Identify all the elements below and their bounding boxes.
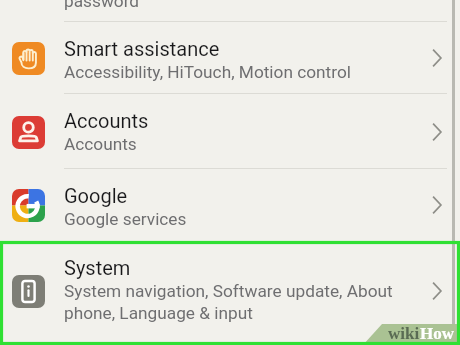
- staticText: wiki: [388, 324, 420, 343]
- staticText: Google: [64, 184, 128, 207]
- button[interactable]: Google: [0, 169, 460, 241]
- staticText: Smart assistance: [64, 37, 220, 60]
- staticText: How: [420, 324, 454, 343]
- button[interactable]: Smart assistance: [0, 22, 460, 94]
- staticText: password: [64, 0, 140, 11]
- staticText: Accounts: [64, 134, 137, 154]
- staticText: Google services: [64, 209, 187, 229]
- staticText: System navigation, Software update, Abou…: [64, 281, 414, 324]
- staticText: Accounts: [64, 109, 149, 132]
- button[interactable]: System: [0, 241, 460, 345]
- staticText: System: [64, 256, 131, 279]
- staticText: Accessibility, HiTouch, Motion control: [64, 62, 351, 82]
- button[interactable]: Accounts: [0, 94, 460, 169]
